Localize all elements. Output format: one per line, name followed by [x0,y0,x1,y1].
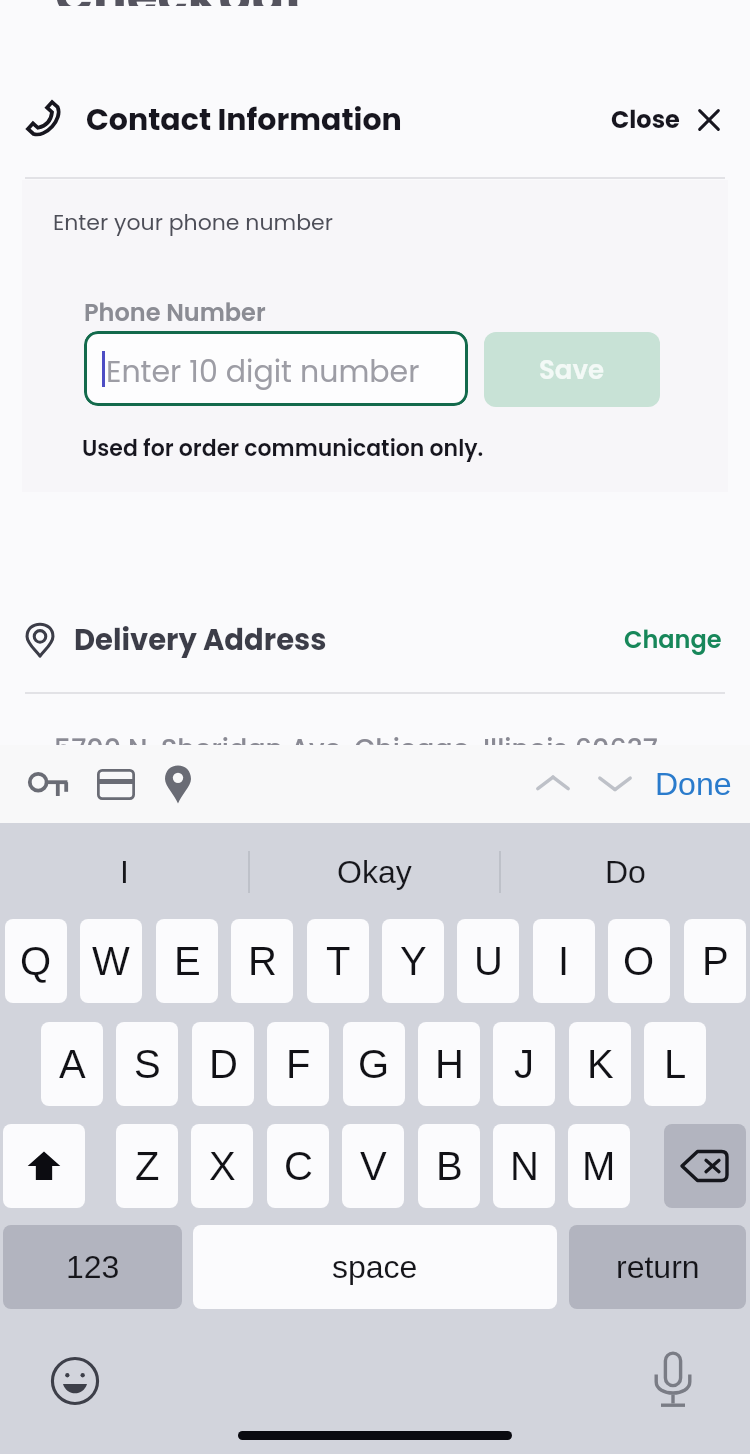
staticText: N [510,1144,539,1189]
button[interactable]: F [267,1022,329,1106]
staticText: V [360,1144,387,1189]
button[interactable]: H [418,1022,480,1106]
button[interactable]: I [533,919,595,1003]
staticText: Checkout [55,0,305,32]
staticText: I [558,939,570,984]
button[interactable]: Previous field [522,753,584,815]
staticText: Contact Information [86,99,402,141]
staticText: 123 [66,1249,120,1285]
staticText: D [209,1042,238,1087]
staticText: O [623,939,655,984]
staticText: space [332,1249,418,1285]
button[interactable]: D [192,1022,254,1106]
button[interactable]: L [644,1022,706,1106]
staticText: Z [135,1144,160,1189]
button[interactable]: T [307,919,369,1003]
button[interactable]: U [457,919,519,1003]
staticText: C [284,1144,313,1189]
staticText: Okay [337,854,412,890]
button[interactable]: R [231,919,293,1003]
button[interactable]: Done [650,753,736,815]
staticText: Done [655,766,732,802]
button[interactable]: I [0,835,248,909]
button[interactable]: S [116,1022,178,1106]
button[interactable]: V [342,1124,404,1208]
staticText: H [435,1042,464,1087]
button[interactable]: Close [605,95,728,145]
button[interactable]: K [569,1022,631,1106]
button[interactable]: space [193,1225,557,1309]
button[interactable]: return [569,1225,746,1309]
staticText: Do [605,854,646,890]
staticText: Q [20,939,52,984]
button[interactable]: B [418,1124,480,1208]
button[interactable]: Next field [584,753,646,815]
staticText: X [209,1144,236,1189]
button[interactable]: Okay [250,835,499,909]
button[interactable]: W [80,919,142,1003]
button[interactable]: Save [484,332,660,407]
staticText: Close [611,103,680,137]
button[interactable]: Enter 10 digit number [84,331,468,406]
staticText: U [474,939,503,984]
button[interactable]: Do [501,835,750,909]
button[interactable]: C [267,1124,329,1208]
staticText: Enter your phone number [53,207,333,238]
button[interactable]: E [156,919,218,1003]
staticText: Enter 10 digit number [106,351,420,393]
button[interactable]: N [493,1124,555,1208]
staticText: L [664,1042,687,1087]
staticText: F [286,1042,311,1087]
staticText: Phone Number [84,296,266,330]
button[interactable]: O [608,919,670,1003]
staticText: B [436,1144,463,1189]
staticText: Save [539,352,605,388]
staticText: M [582,1144,616,1189]
button[interactable]: Passwords [18,755,80,813]
button[interactable]: Z [116,1124,178,1208]
staticText: Y [400,939,427,984]
staticText: E [174,939,201,984]
button[interactable]: Dictation [653,1352,693,1408]
staticText: K [587,1042,614,1087]
staticText: T [326,939,351,984]
staticText: P [702,939,729,984]
staticText: Used for order communication only. [82,433,484,464]
staticText: G [358,1042,390,1087]
button[interactable]: 123 [3,1225,182,1309]
button[interactable]: A [41,1022,103,1106]
button[interactable]: Change [620,615,726,665]
staticText: R [248,939,277,984]
staticText: 5700 N. Sheridan Ave, Chicago, Illinois … [54,730,658,768]
button[interactable]: P [684,919,746,1003]
staticText: W [92,939,130,984]
button[interactable]: Q [5,919,67,1003]
staticText: return [616,1249,700,1285]
staticText: A [59,1042,86,1087]
staticText: S [134,1042,161,1087]
button[interactable]: Emoji keyboard [51,1357,99,1405]
button[interactable]: M [568,1124,630,1208]
staticText: I [120,854,129,890]
button[interactable]: Shift [3,1124,85,1208]
button[interactable]: X [191,1124,253,1208]
staticText: Change [624,623,722,657]
button[interactable]: Y [382,919,444,1003]
button[interactable]: Saved cards [85,755,147,813]
staticText: J [514,1042,534,1087]
staticText: Delivery Address [74,620,327,661]
button[interactable]: Addresses [147,755,209,813]
button[interactable]: G [343,1022,405,1106]
button[interactable]: J [493,1022,555,1106]
button[interactable]: Backspace [664,1124,746,1208]
